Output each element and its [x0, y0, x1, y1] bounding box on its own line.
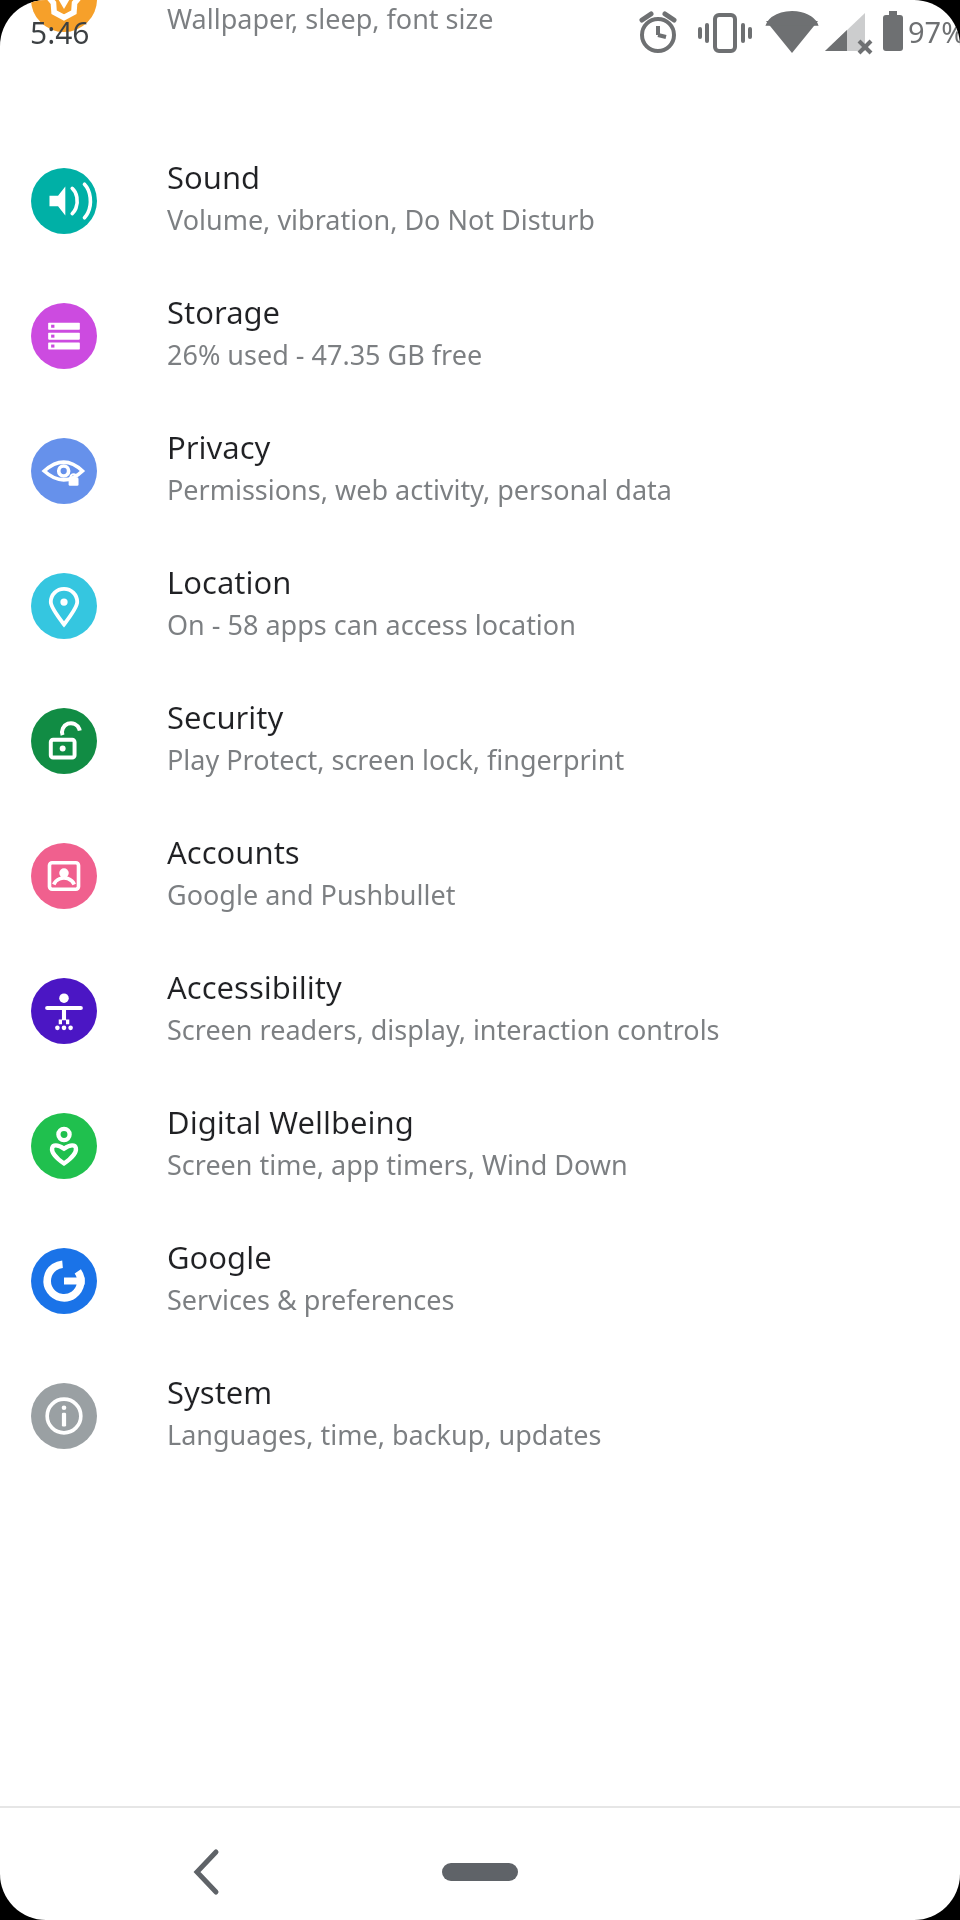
button[interactable]: Security	[0, 675, 960, 810]
staticText: Languages, time, backup, updates	[167, 1416, 602, 1453]
staticText: On - 58 apps can access location	[167, 606, 576, 643]
button[interactable]: Storage	[0, 270, 960, 405]
staticText: 97%	[908, 12, 960, 51]
staticText: Permissions, web activity, personal data	[167, 471, 672, 508]
button[interactable]: Display	[0, 0, 960, 135]
staticText: 26% used - 47.35 GB free	[167, 336, 483, 373]
staticText: Privacy	[167, 426, 271, 468]
button[interactable]: System	[0, 1350, 960, 1485]
staticText: Screen readers, display, interaction con…	[167, 1011, 720, 1048]
staticText: 5:46	[30, 12, 90, 53]
staticText: Google	[167, 1236, 272, 1278]
staticText: Accessibility	[167, 966, 342, 1008]
button[interactable]: Accounts	[0, 810, 960, 945]
button[interactable]: Location	[0, 540, 960, 675]
button[interactable]: Home	[428, 1855, 532, 1889]
staticText: Location	[167, 561, 292, 603]
staticText: Storage	[167, 291, 281, 333]
staticText: Google and Pushbullet	[167, 876, 456, 913]
button[interactable]: Back	[155, 1820, 259, 1920]
staticText: System	[167, 1371, 273, 1413]
staticText: Services & preferences	[167, 1281, 455, 1318]
button[interactable]: Google	[0, 1215, 960, 1350]
button[interactable]: Privacy	[0, 405, 960, 540]
staticText: Wallpaper, sleep, font size	[167, 0, 494, 37]
button[interactable]: Sound	[0, 135, 960, 270]
staticText: Screen time, app timers, Wind Down	[167, 1146, 628, 1183]
staticText: Security	[167, 696, 284, 738]
staticText: Volume, vibration, Do Not Disturb	[167, 201, 595, 238]
staticText: Digital Wellbeing	[167, 1101, 414, 1143]
staticText: Play Protect, screen lock, fingerprint	[167, 741, 625, 778]
staticText: Accounts	[167, 831, 300, 873]
staticText: Sound	[167, 156, 261, 198]
button[interactable]: Digital Wellbeing	[0, 1080, 960, 1215]
button[interactable]: Accessibility	[0, 945, 960, 1080]
